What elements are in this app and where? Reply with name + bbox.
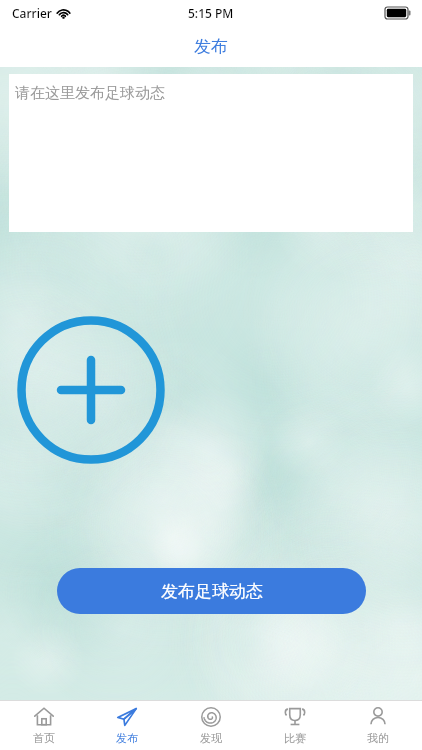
button[interactable]: 请在这里发布足球动态 bbox=[9, 74, 413, 232]
staticText: 请在这里发布足球动态 bbox=[15, 84, 165, 103]
staticText: 5:15 PM bbox=[188, 5, 234, 21]
staticText: 我的 bbox=[367, 731, 389, 745]
button[interactable]: 我的 bbox=[338, 701, 418, 750]
button[interactable]: 发现 bbox=[171, 701, 251, 750]
staticText: 发布足球动态 bbox=[161, 581, 263, 602]
staticText: 首页 bbox=[33, 731, 55, 745]
button[interactable]: Add photo bbox=[17, 316, 165, 464]
button[interactable]: 首页 bbox=[4, 701, 84, 750]
staticText: 比赛 bbox=[284, 731, 306, 745]
button[interactable]: 发布 bbox=[87, 701, 167, 750]
button[interactable]: 比赛 bbox=[255, 701, 335, 750]
staticText: 发布 bbox=[194, 36, 228, 57]
staticText: 发现 bbox=[200, 731, 222, 745]
staticText: 发布 bbox=[116, 731, 138, 745]
button[interactable]: 发布足球动态 bbox=[57, 568, 366, 614]
staticText: Carrier bbox=[12, 5, 52, 21]
